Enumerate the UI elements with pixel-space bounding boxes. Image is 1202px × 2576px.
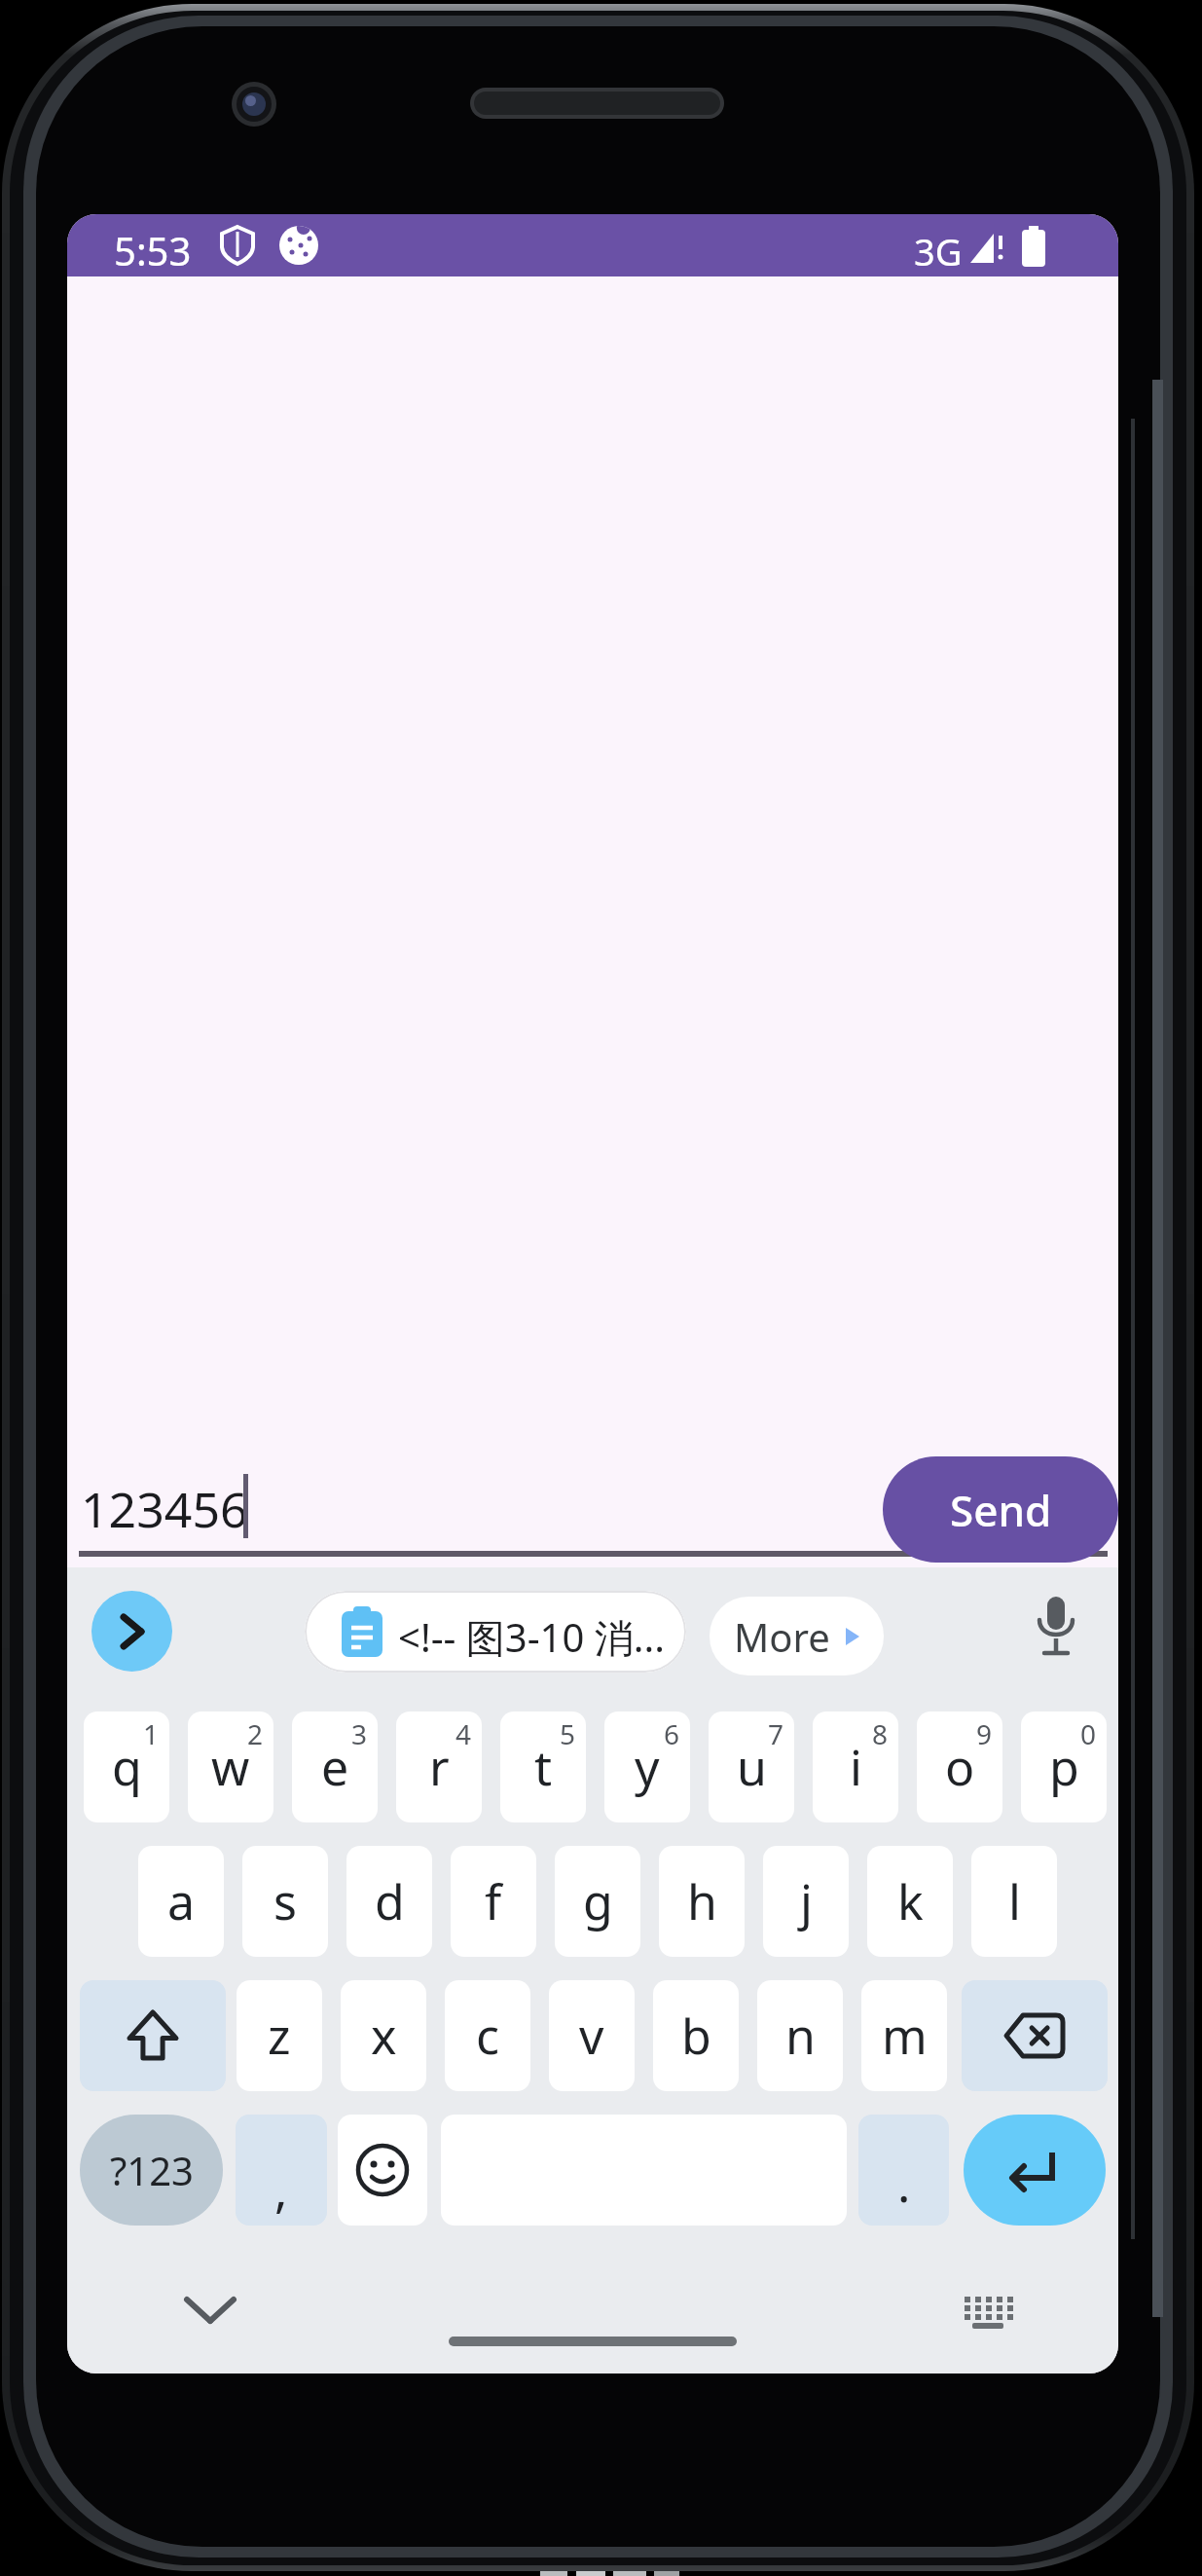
staticText: s — [273, 1868, 297, 1934]
staticText: x — [371, 2003, 397, 2069]
staticText: v — [579, 2003, 604, 2069]
staticText: y — [635, 1734, 660, 1800]
staticText: q — [112, 1734, 142, 1800]
staticText: 1 — [143, 1715, 160, 1752]
button[interactable] — [1033, 1595, 1079, 1667]
staticText: t — [534, 1734, 553, 1800]
staticText: , — [274, 2156, 288, 2223]
staticText: <!-- 图3-10 消... — [398, 1610, 665, 1664]
button[interactable]: g — [555, 1846, 640, 1957]
button[interactable] — [91, 1591, 172, 1672]
button[interactable]: w — [188, 1711, 273, 1822]
button[interactable]: t — [500, 1711, 586, 1822]
staticText: n — [785, 2003, 816, 2069]
staticText: 123456 — [81, 1476, 248, 1542]
button[interactable] — [964, 2115, 1106, 2226]
button[interactable]: f — [451, 1846, 536, 1957]
staticText: ?123 — [110, 2144, 194, 2196]
staticText: 6 — [664, 1715, 680, 1752]
button[interactable]: l — [971, 1846, 1057, 1957]
staticText: c — [476, 2003, 499, 2069]
staticText: 2 — [247, 1715, 264, 1752]
button[interactable]: d — [346, 1846, 432, 1957]
button[interactable] — [185, 2296, 236, 2325]
staticText: b — [681, 2003, 711, 2069]
staticText: 0 — [1080, 1715, 1097, 1752]
button[interactable]: . — [858, 2115, 949, 2226]
staticText: 3 — [351, 1715, 368, 1752]
staticText: l — [1008, 1868, 1021, 1934]
staticText: w — [211, 1734, 250, 1800]
staticText: Send — [950, 1481, 1052, 1539]
button[interactable]: More — [710, 1597, 884, 1675]
button[interactable]: a — [138, 1846, 224, 1957]
button[interactable]: , — [236, 2115, 327, 2226]
button[interactable]: c — [445, 1980, 530, 2091]
button[interactable]: o — [917, 1711, 1002, 1822]
staticText: d — [375, 1868, 405, 1934]
staticText: f — [485, 1868, 502, 1934]
staticText: 5:53 — [114, 224, 192, 276]
button[interactable]: b — [653, 1980, 739, 2091]
button[interactable]: v — [549, 1980, 635, 2091]
staticText: More — [734, 1610, 830, 1663]
button[interactable] — [962, 1980, 1108, 2091]
button[interactable]: e — [292, 1711, 378, 1822]
button[interactable] — [338, 2115, 427, 2226]
staticText: 8 — [872, 1715, 889, 1752]
button[interactable] — [80, 1980, 226, 2091]
staticText: 5 — [560, 1715, 576, 1752]
staticText: g — [583, 1868, 613, 1934]
button[interactable]: r — [396, 1711, 482, 1822]
button[interactable]: Send — [883, 1456, 1118, 1563]
button[interactable]: u — [709, 1711, 794, 1822]
button[interactable]: k — [867, 1846, 953, 1957]
button[interactable]: i — [813, 1711, 898, 1822]
button[interactable]: s — [242, 1846, 328, 1957]
staticText: k — [897, 1868, 924, 1934]
staticText: j — [800, 1868, 813, 1934]
staticText: z — [268, 2003, 291, 2069]
staticText: o — [945, 1734, 975, 1800]
staticText: . — [897, 2151, 911, 2217]
button[interactable] — [961, 2293, 1015, 2332]
button[interactable]: q — [84, 1711, 169, 1822]
staticText: h — [687, 1868, 717, 1934]
staticText: 3G — [914, 226, 963, 276]
staticText: a — [167, 1868, 196, 1934]
button[interactable]: <!-- 图3-10 消... — [305, 1591, 686, 1673]
staticText: r — [429, 1734, 450, 1800]
staticText: i — [850, 1734, 862, 1800]
button[interactable]: ?123 — [80, 2115, 223, 2226]
staticText: 7 — [768, 1715, 784, 1752]
staticText: e — [321, 1734, 349, 1800]
staticText: p — [1049, 1734, 1079, 1800]
button[interactable]: h — [659, 1846, 745, 1957]
button[interactable]: m — [861, 1980, 947, 2091]
button[interactable]: j — [763, 1846, 849, 1957]
staticText: u — [737, 1734, 767, 1800]
button[interactable]: z — [237, 1980, 322, 2091]
button[interactable]: p — [1021, 1711, 1107, 1822]
button[interactable]: x — [341, 1980, 426, 2091]
staticText: m — [882, 2003, 928, 2069]
staticText: 9 — [976, 1715, 993, 1752]
staticText: 4 — [455, 1715, 472, 1752]
button[interactable]: y — [604, 1711, 690, 1822]
button[interactable]: n — [757, 1980, 843, 2091]
